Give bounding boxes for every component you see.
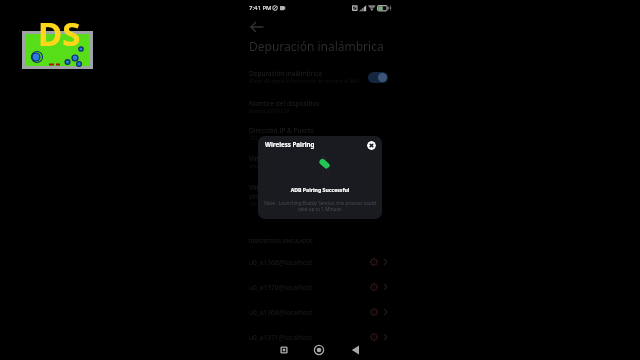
button[interactable]: Home (307, 336, 331, 360)
staticText: Xiaomi 22041219 (249, 108, 290, 115)
button[interactable]: u0_a1368@localhost (240, 301, 400, 323)
button[interactable]: u0_a1370@localhost (240, 276, 400, 298)
button[interactable]: u0_a1368@localhost (240, 251, 400, 273)
staticText: DS (38, 11, 81, 56)
staticText: Vincula nuevos dispositivos (249, 163, 314, 170)
staticText: Nombre del dispositivo (249, 99, 320, 108)
staticText: u0_a1371@localhost (249, 333, 313, 342)
staticText: Depuración inalámbrica (249, 69, 322, 78)
button[interactable]: Depuración inalámbrica (240, 66, 400, 88)
staticText: Modo de depuración cuando se conecta al … (249, 78, 360, 85)
staticText: Vincular dispositivo con código QR (249, 154, 355, 163)
button[interactable]: Dirección IP & Puerto (240, 123, 400, 145)
staticText: Note : Launching Buddy Service, this pro… (262, 200, 378, 212)
staticText: Dirección IP & Puerto (249, 126, 315, 135)
staticText: DISPOSITIVOS VINCULADOS (249, 238, 313, 245)
staticText: u0_a1368@localhost (249, 258, 313, 267)
button[interactable]: Vincular dispositivo con código QR (240, 151, 400, 173)
staticText: 192.168.0.103:41235 (249, 135, 298, 142)
button[interactable]: Nombre del dispositivo (240, 96, 400, 118)
staticText: u0_a1368@localhost (249, 308, 313, 317)
other: Device options (369, 330, 391, 344)
staticText: Vincula nuevos dispositivos (249, 201, 314, 208)
button[interactable]: Back (343, 336, 367, 360)
other: Device options (369, 255, 391, 269)
staticText: vinculación (249, 192, 284, 201)
staticText: u0_a1370@localhost (249, 283, 313, 292)
button[interactable]: u0_a1371@localhost (240, 326, 400, 348)
button[interactable]: Recents (272, 336, 296, 360)
button[interactable]: Close (367, 141, 376, 150)
staticText: Wireless Pairing (265, 140, 315, 148)
staticText: Depuración inalámbrica (249, 38, 384, 54)
button[interactable]: Back (240, 17, 268, 35)
staticText: 7:41 PM (249, 4, 272, 12)
staticText: ADB Pairing Successful (258, 186, 382, 193)
other: Device options (369, 305, 391, 319)
other: Device options (369, 280, 391, 294)
button[interactable]: Wireless debugging toggle (368, 72, 388, 83)
staticText: Vincular dispositivo con código de (249, 183, 353, 192)
